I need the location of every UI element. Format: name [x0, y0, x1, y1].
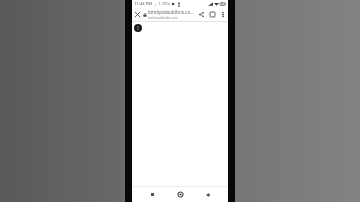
button[interactable]: bmclipsdoublbrio.com... — [143, 8, 195, 21]
staticText: 11:44 PM — [134, 1, 153, 7]
staticText: | — [154, 2, 157, 7]
button[interactable]: Tabs — [207, 9, 218, 20]
button[interactable]: Profile — [134, 24, 142, 32]
button[interactable]: Close — [132, 9, 143, 20]
staticText: 1.7K/s — [158, 1, 171, 7]
staticText: bmclipsdoublbrio.com... — [148, 9, 195, 15]
button[interactable]: Share — [196, 9, 207, 20]
button[interactable]: Home — [174, 188, 187, 201]
button[interactable]: More options — [218, 10, 227, 19]
staticText: bmlooodolsbl.com — [148, 15, 178, 20]
button[interactable]: Back — [201, 188, 214, 201]
button[interactable]: Recent apps — [146, 188, 159, 201]
